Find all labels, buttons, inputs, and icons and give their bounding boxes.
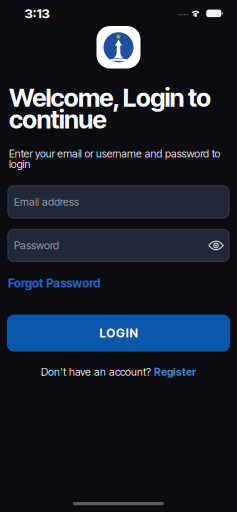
button[interactable]: LOGIN (7, 315, 230, 352)
staticText: Email address (14, 196, 79, 208)
button[interactable]: Register (154, 366, 196, 378)
staticText: Don't have an account? (41, 366, 151, 378)
staticText: 3:13 (24, 5, 49, 21)
staticText: Password (46, 276, 100, 290)
button[interactable]: Password (7, 229, 229, 262)
staticText: Welcome, Login to continue (9, 82, 211, 134)
staticText: Password (14, 239, 59, 252)
staticText: Register (154, 366, 196, 378)
staticText: Forgot (8, 276, 43, 290)
staticText: LOGIN (99, 326, 138, 340)
staticText: Enter your email or username and passwor… (9, 147, 220, 170)
button[interactable]: Forgot (8, 276, 100, 290)
button[interactable]: Email address (7, 185, 229, 218)
